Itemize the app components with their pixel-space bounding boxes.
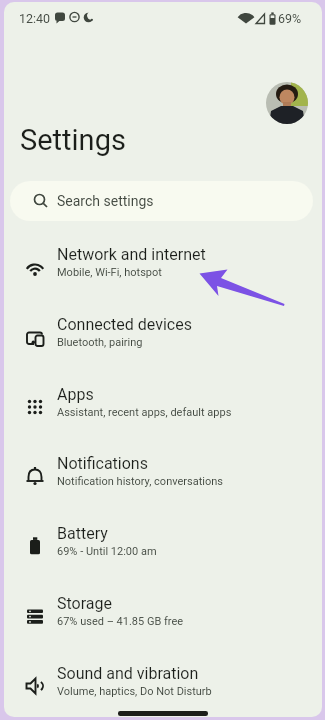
staticText: Settings [20, 123, 126, 157]
button[interactable]: Apps [0, 372, 325, 442]
button[interactable]: Network and internet [0, 232, 325, 302]
staticText: Search settings [57, 193, 154, 209]
button[interactable]: Battery [0, 511, 325, 581]
button[interactable]: Notifications [0, 441, 325, 511]
staticText: Assistant, recent apps, default apps [57, 406, 232, 419]
button[interactable] [266, 82, 308, 124]
staticText: Notifications [57, 454, 148, 473]
button[interactable]: Search settings [10, 181, 313, 221]
button[interactable]: Connected devices [0, 302, 325, 372]
staticText: Sound and vibration [57, 664, 199, 683]
button[interactable]: Storage [0, 581, 325, 651]
staticText: Apps [57, 385, 94, 404]
staticText: Volume, haptics, Do Not Disturb [57, 685, 212, 698]
staticText: Bluetooth, pairing [57, 336, 143, 349]
staticText: 67% used – 41.85 GB free [57, 615, 184, 628]
staticText: Storage [57, 594, 112, 613]
staticText: 69% [278, 11, 302, 26]
button[interactable]: Sound and vibration [0, 651, 325, 720]
staticText: 12:40 [19, 11, 51, 26]
staticText: Mobile, Wi-Fi, hotspot [57, 266, 162, 279]
staticText: Notification history, conversations [57, 475, 223, 488]
staticText: Battery [57, 524, 108, 543]
staticText: Network and internet [57, 245, 206, 264]
staticText: Connected devices [57, 315, 192, 334]
staticText: 69% - Until 12:00 am [57, 545, 157, 558]
